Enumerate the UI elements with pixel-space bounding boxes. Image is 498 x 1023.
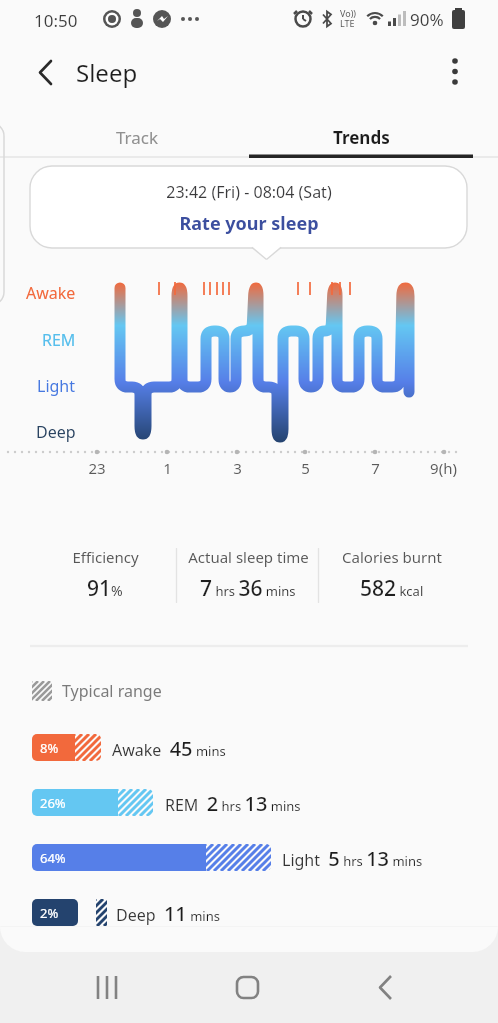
staticText: 26%	[40, 794, 66, 812]
staticText: 5	[301, 458, 310, 478]
staticText: Light 5 hrs 13 mins	[282, 845, 423, 872]
staticText: 7 hrs 36 mins	[200, 574, 296, 603]
staticText: REM	[42, 329, 76, 351]
staticText: 9(h)	[430, 458, 457, 478]
staticText: 7	[371, 458, 380, 478]
staticText: Deep 11 mins	[116, 900, 220, 927]
button[interactable]	[20, 48, 70, 98]
staticText: 91%	[87, 574, 123, 603]
staticText: Track	[116, 126, 159, 149]
staticText: Trends	[333, 126, 390, 149]
staticText: 64%	[40, 849, 66, 867]
staticText: Sleep	[76, 56, 138, 89]
staticText: 23:42 (Fri) - 08:04 (Sat)	[166, 181, 332, 203]
staticText: 23	[88, 458, 106, 478]
staticText: Vo))	[340, 7, 357, 19]
button[interactable]: Track	[25, 118, 249, 156]
staticText: Light	[37, 375, 76, 397]
staticText: 90%	[410, 8, 444, 31]
button[interactable]	[433, 48, 478, 98]
staticText: Actual sleep time	[188, 547, 309, 567]
staticText: 8%	[40, 739, 59, 757]
button[interactable]	[340, 962, 430, 1012]
staticText: REM 2 hrs 13 mins	[165, 790, 301, 817]
staticText: Typical range	[62, 680, 162, 702]
button[interactable]	[203, 962, 293, 1012]
staticText: 2%	[40, 904, 59, 922]
staticText: 3	[233, 458, 242, 478]
staticText: Efficiency	[72, 547, 139, 567]
staticText: Deep	[36, 421, 76, 443]
staticText: Rate your sleep	[179, 211, 319, 236]
staticText: Awake	[26, 282, 76, 304]
staticText: 1	[163, 458, 172, 478]
staticText: Calories burnt	[342, 547, 442, 567]
button[interactable]: Trends	[249, 118, 473, 156]
button[interactable]	[30, 166, 467, 248]
staticText: Awake 45 mins	[112, 735, 226, 762]
button[interactable]	[60, 962, 150, 1012]
staticText: LTE	[340, 17, 355, 29]
staticText: 10:50	[34, 9, 78, 32]
staticText: 582 kcal	[360, 574, 424, 603]
